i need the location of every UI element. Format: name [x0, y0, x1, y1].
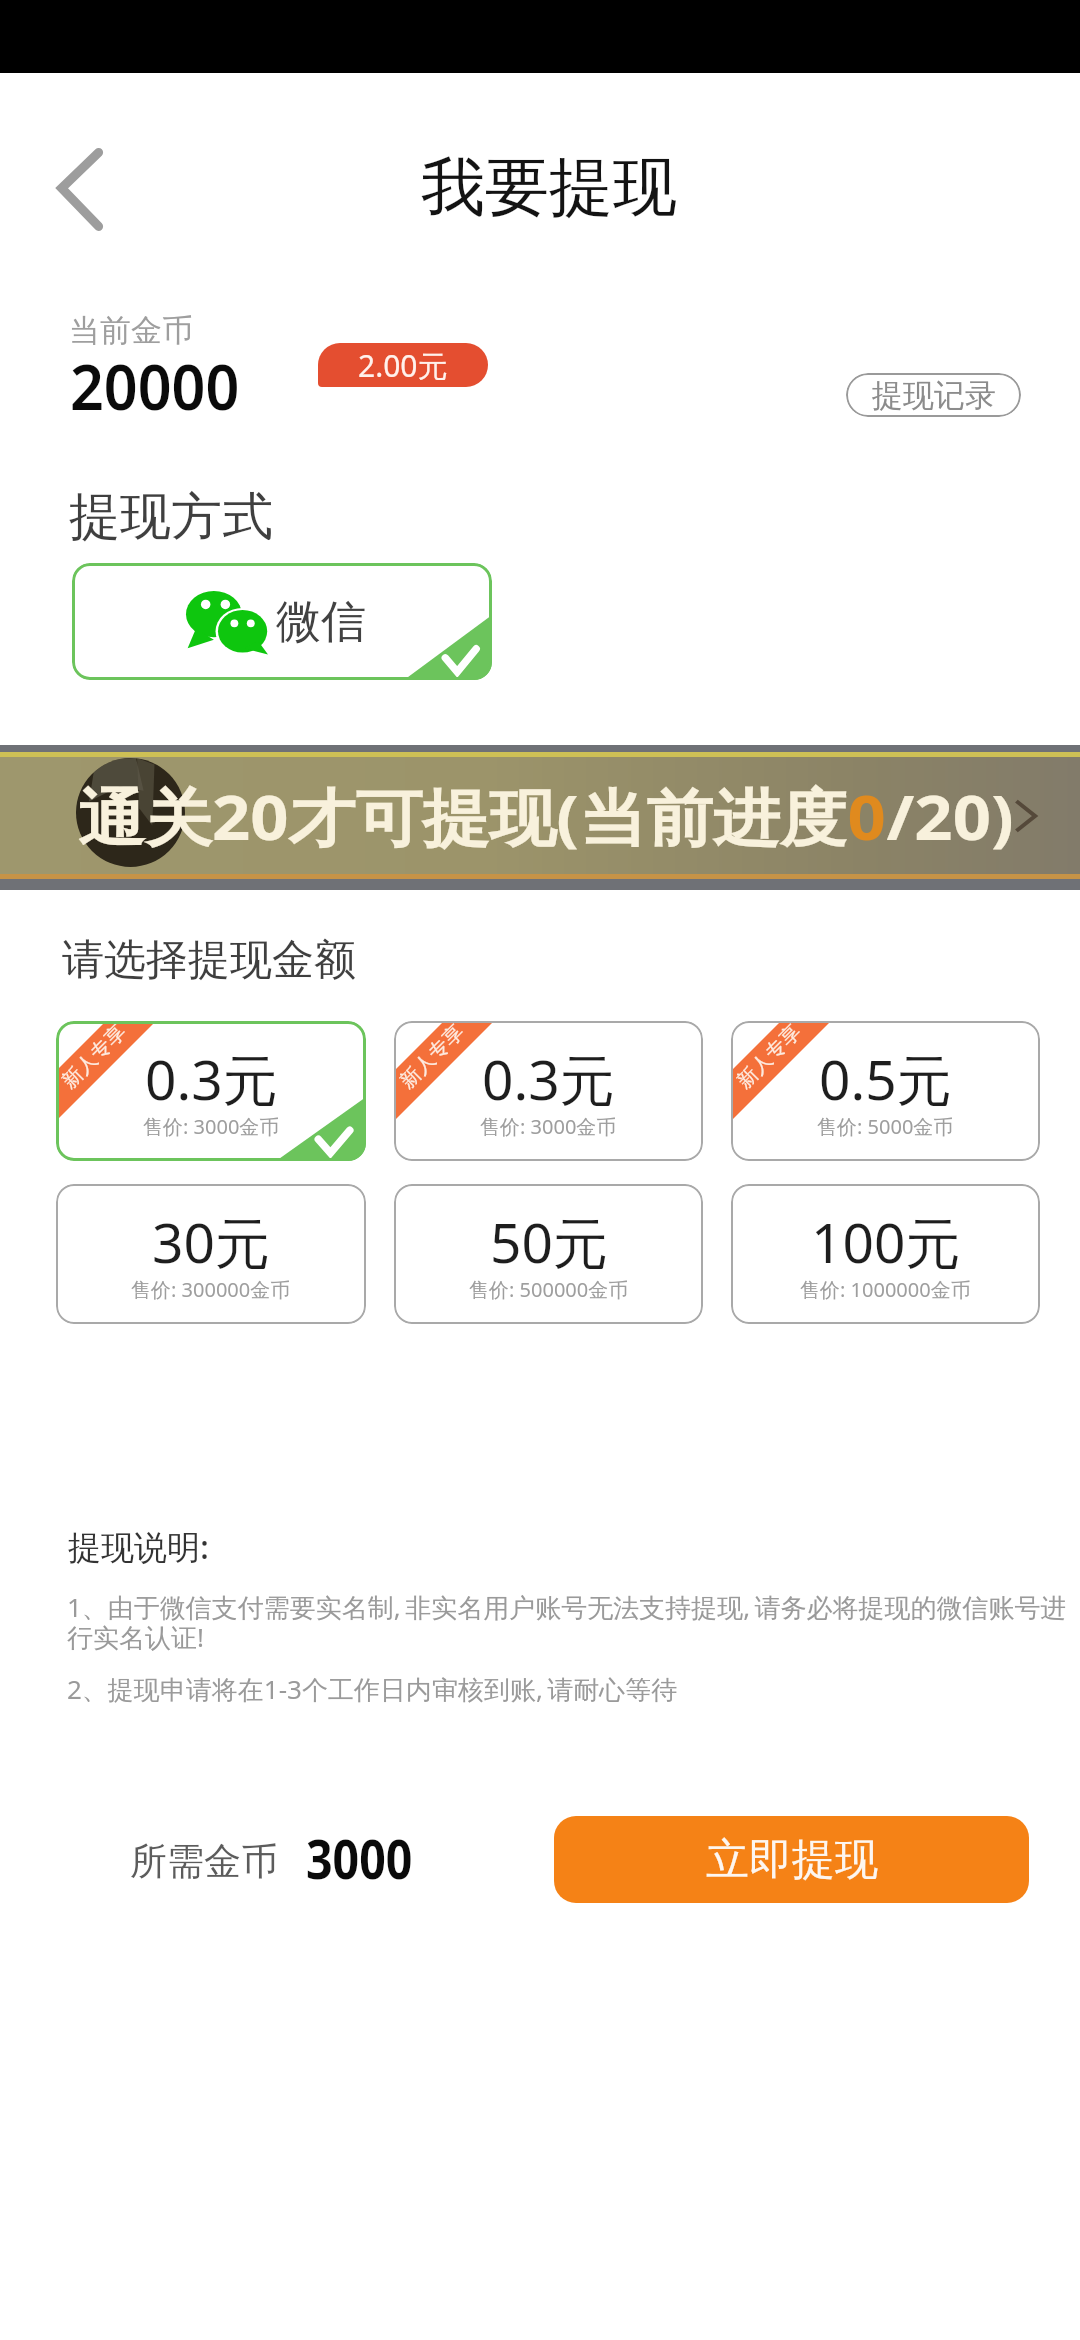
staticText: 我要提现 [421, 147, 677, 228]
staticText: 20000 [70, 343, 240, 429]
staticText: 0.3元 [145, 1041, 278, 1116]
staticText: 立即提现 [706, 1833, 878, 1887]
staticText: 售价: 1000000金币 [800, 1276, 971, 1303]
staticText: 售价: 5000金币 [817, 1113, 954, 1140]
staticText: 行实名认证! [67, 1619, 204, 1655]
staticText: 2、提现申请将在1-3个工作日内审核到账, 请耐心等待 [67, 1671, 678, 1707]
staticText: 0.5元 [819, 1041, 952, 1116]
button[interactable]: 100元 [731, 1184, 1040, 1324]
staticText: 请选择提现金额 [62, 934, 356, 987]
staticText: /20) [886, 774, 1014, 859]
button[interactable]: 新人专享 [394, 1021, 703, 1161]
staticText: 新人专享 [395, 1021, 469, 1094]
staticText: 30元 [152, 1204, 270, 1279]
staticText: 售价: 3000金币 [143, 1113, 280, 1140]
staticText: 50元 [490, 1204, 608, 1279]
staticText: 所需金币 [130, 1838, 278, 1885]
staticText: 售价: 3000金币 [480, 1113, 617, 1140]
button[interactable]: 新人专享 [731, 1021, 1040, 1161]
button[interactable]: Back [30, 138, 131, 239]
staticText: 0.3元 [482, 1041, 615, 1116]
staticText: 提现说明: [68, 1524, 209, 1569]
button[interactable]: 新人专享 [56, 1021, 366, 1161]
staticText: 1、由于微信支付需要实名制, 非实名用户账号无法支持提现, 请务必将提现的微信账… [67, 1589, 1067, 1625]
staticText: 提现方式 [69, 485, 273, 549]
staticText: 0 [847, 774, 886, 859]
staticText: 3000 [306, 1821, 413, 1895]
staticText: 新人专享 [732, 1021, 806, 1094]
button[interactable]: 50元 [394, 1184, 703, 1324]
staticText: 售价: 300000金币 [131, 1276, 291, 1303]
button[interactable]: 提现记录 [846, 373, 1021, 417]
staticText: 当前金币 [69, 311, 193, 350]
button[interactable]: 通关20才可提现(当前进度 [0, 745, 1080, 890]
button[interactable]: 微信 [72, 563, 492, 680]
staticText: 新人专享 [57, 1021, 131, 1094]
staticText: 提现记录 [872, 376, 996, 415]
staticText: 2.00元 [358, 345, 448, 386]
staticText: 100元 [811, 1204, 961, 1279]
button[interactable]: 立即提现 [554, 1816, 1029, 1903]
staticText: 微信 [276, 594, 366, 651]
button[interactable]: 30元 [56, 1184, 366, 1324]
staticText: 售价: 500000金币 [469, 1276, 629, 1303]
staticText: 通关20才可提现(当前进度 [78, 774, 847, 859]
